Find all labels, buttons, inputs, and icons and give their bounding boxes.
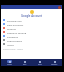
staticText: Data [38, 63, 42, 65]
button[interactable]: Security [1, 26, 62, 30]
button[interactable]: Security [47, 59, 62, 66]
button[interactable]: People & sharing [1, 30, 62, 34]
staticText: Google Account [1, 14, 62, 18]
staticText: Personal info [7, 19, 22, 22]
staticText: Data & privacy [7, 23, 24, 26]
staticText: Info [23, 63, 27, 65]
button[interactable]: Data & privacy [1, 22, 62, 26]
button[interactable]: Home [1, 59, 17, 66]
staticText: Security [51, 63, 58, 65]
staticText: Payments [7, 35, 19, 38]
staticText: Privacy Policy · Terms [3, 48, 23, 51]
button[interactable]: Personal info [1, 18, 62, 22]
button[interactable]: Info [17, 59, 32, 66]
staticText: About [7, 43, 14, 46]
staticText: Subscriptions [7, 39, 23, 42]
button[interactable]: Data [32, 59, 47, 66]
button[interactable]: Payments [1, 34, 62, 38]
button[interactable]: Subscriptions [1, 38, 62, 42]
staticText: Home [7, 63, 12, 65]
staticText: Security [7, 27, 16, 30]
button[interactable]: Account [58, 6, 61, 9]
button[interactable]: About [1, 42, 62, 46]
staticText: People & sharing [7, 31, 27, 34]
